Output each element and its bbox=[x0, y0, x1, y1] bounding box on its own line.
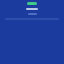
button[interactable]: Start bbox=[27, 2, 37, 5]
button[interactable]: Item two bbox=[28, 13, 37, 15]
button[interactable]: Item one bbox=[26, 8, 38, 10]
